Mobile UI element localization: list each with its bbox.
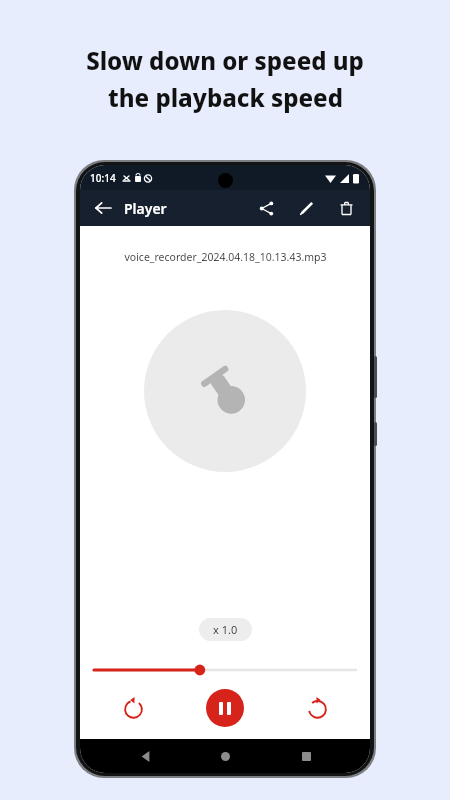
button[interactable]: Back (90, 195, 116, 221)
staticText: the playback speed (108, 81, 343, 114)
button[interactable]: Share (252, 194, 280, 222)
button[interactable] (94, 661, 356, 679)
staticText: Player (124, 199, 167, 218)
button[interactable]: x 1.0 (199, 618, 252, 641)
button[interactable]: Edit (292, 194, 320, 222)
button[interactable]: Pause (206, 689, 244, 727)
button[interactable]: Delete (332, 194, 360, 222)
staticText: voice_recorder_2024.04.18_10.13.43.mp3 (124, 250, 327, 264)
staticText: x 1.0 (213, 622, 238, 637)
staticText: Slow down or speed up (86, 44, 364, 77)
button[interactable]: Home (209, 740, 241, 772)
button[interactable]: Rewind 5 seconds (114, 689, 152, 727)
button[interactable]: Forward 5 seconds (298, 689, 336, 727)
button[interactable]: Back (129, 740, 161, 772)
button[interactable]: Recents (290, 740, 322, 772)
staticText: 10:14 (90, 171, 116, 185)
